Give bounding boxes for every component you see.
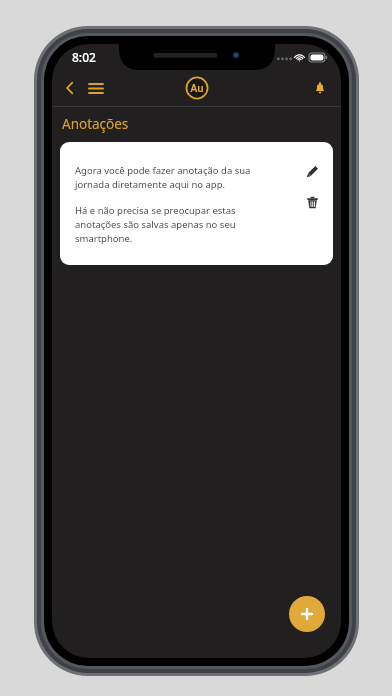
staticText: Há e não precisa se preocupar estas anot… bbox=[75, 204, 236, 245]
button[interactable]: Agora você pode fazer anotação da sua jo… bbox=[60, 142, 333, 265]
button[interactable]: Excluir bbox=[301, 191, 323, 213]
button[interactable]: Logo Au bbox=[184, 75, 210, 101]
staticText: Anotações bbox=[62, 115, 129, 133]
button[interactable]: Editar bbox=[301, 160, 323, 182]
staticText: Agora você pode fazer anotação da sua jo… bbox=[75, 164, 251, 191]
button[interactable]: Adicionar anotação bbox=[289, 596, 325, 632]
button[interactable]: Notificações bbox=[307, 75, 333, 101]
staticText: Au bbox=[190, 81, 204, 95]
button[interactable]: Menu bbox=[83, 75, 109, 101]
button[interactable]: Voltar bbox=[57, 75, 83, 101]
staticText: 8:02 bbox=[72, 49, 96, 65]
